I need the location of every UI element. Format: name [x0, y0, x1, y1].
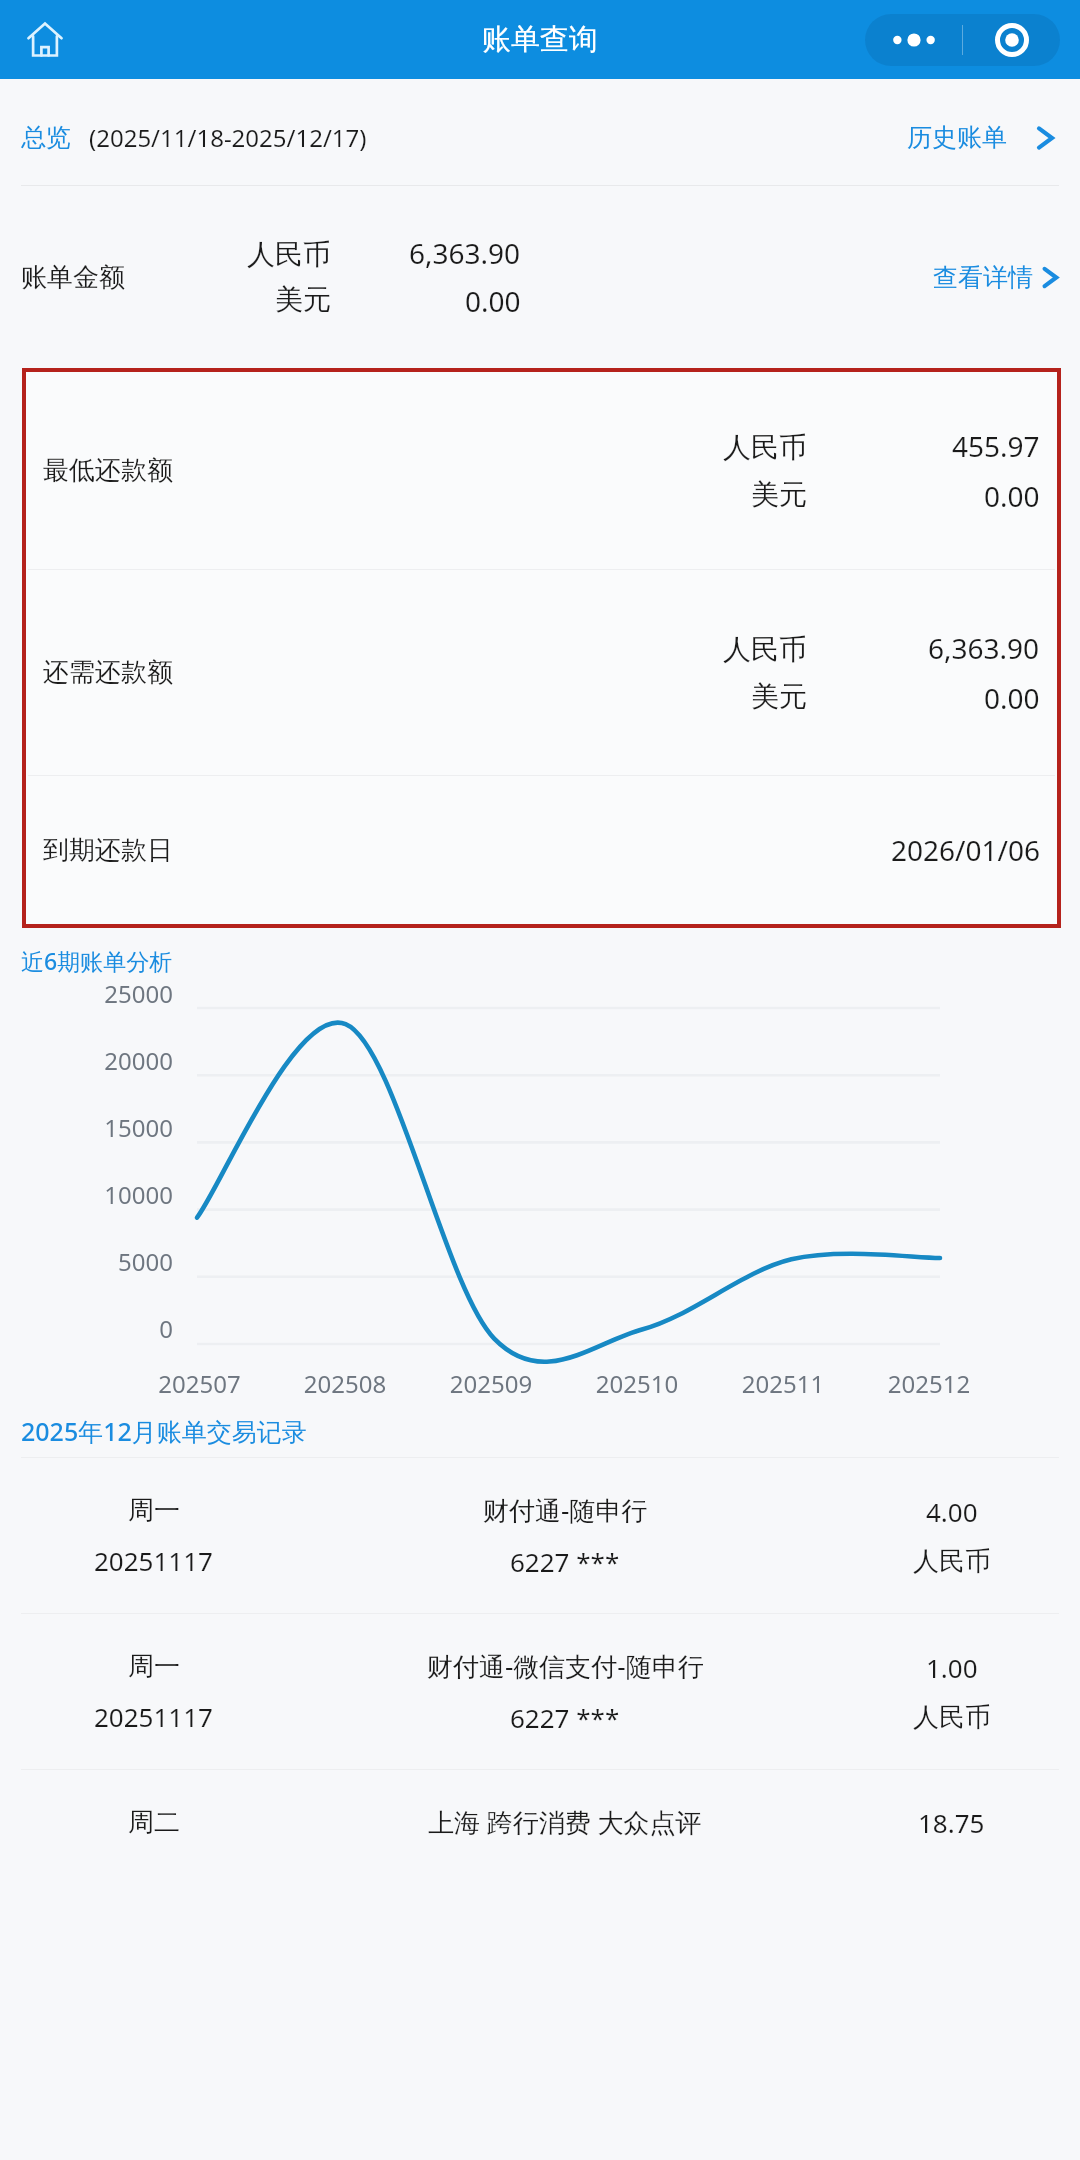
staticText: 历史账单: [907, 122, 1007, 153]
staticText: 202508: [272, 1367, 418, 1400]
button[interactable]: 历史账单: [907, 122, 1059, 153]
staticText: 财付通-微信支付-随申行: [427, 1648, 704, 1684]
button[interactable]: 总览: [21, 122, 71, 153]
staticText: 5000: [21, 1245, 173, 1278]
staticText: 还需还款额: [43, 656, 173, 689]
staticText: 2025年12月账单交易记录: [21, 1414, 307, 1448]
staticText: 账单金额: [21, 261, 201, 294]
staticText: 0: [21, 1312, 173, 1345]
staticText: 0.00: [465, 282, 521, 320]
staticText: 人民币: [913, 1701, 991, 1734]
staticText: 20251117: [94, 1699, 213, 1734]
button[interactable]: More: [865, 14, 962, 66]
staticText: 6227 ***: [510, 1544, 620, 1579]
button[interactable]: 到期还款日: [43, 776, 1040, 924]
staticText: 18.75: [918, 1805, 985, 1840]
button[interactable]: 周二: [21, 1770, 1059, 1925]
staticText: 202507: [127, 1367, 272, 1400]
staticText: 455.97: [952, 427, 1040, 465]
staticText: 账单查询: [482, 21, 598, 58]
staticText: 近6期账单分析: [21, 945, 173, 976]
staticText: 20000: [21, 1044, 173, 1077]
staticText: 202509: [418, 1367, 564, 1400]
staticText: 查看详情: [933, 262, 1033, 293]
staticText: 2026/01/06: [891, 831, 1040, 869]
button[interactable]: Home: [22, 17, 68, 63]
staticText: 财付通-随申行: [483, 1492, 648, 1528]
staticText: 15000: [21, 1111, 173, 1144]
staticText: 6,363.90: [928, 629, 1040, 667]
staticText: 6,363.90: [409, 234, 521, 272]
staticText: 上海 跨行消费 大众点评: [428, 1804, 702, 1840]
staticText: 周二: [128, 1806, 180, 1839]
staticText: 20251117: [94, 1543, 213, 1578]
staticText: 4.00: [926, 1494, 978, 1529]
staticText: 202510: [564, 1367, 710, 1400]
staticText: 美元: [751, 679, 807, 714]
staticText: 人民币: [913, 1545, 991, 1578]
staticText: 到期还款日: [43, 834, 173, 867]
staticText: 人民币: [723, 632, 807, 667]
staticText: 1.00: [926, 1650, 978, 1685]
staticText: 10000: [21, 1178, 173, 1211]
staticText: 美元: [751, 477, 807, 512]
button[interactable]: Close: [963, 14, 1060, 66]
staticText: 0.00: [984, 679, 1040, 717]
button[interactable]: 最低还款额: [43, 372, 1040, 569]
staticText: (2025/11/18-2025/12/17): [89, 121, 367, 154]
staticText: 202511: [710, 1367, 856, 1400]
button[interactable]: 还需还款额: [43, 570, 1040, 775]
staticText: 周一: [128, 1650, 180, 1683]
staticText: 6227 ***: [510, 1700, 620, 1735]
staticText: 202512: [856, 1367, 1002, 1400]
staticText: 最低还款额: [43, 454, 173, 487]
staticText: 人民币: [247, 237, 331, 272]
button[interactable]: 账单金额: [21, 186, 1059, 368]
button[interactable]: 周一: [21, 1458, 1059, 1613]
staticText: 周一: [128, 1494, 180, 1527]
staticText: 0.00: [984, 477, 1040, 515]
staticText: 25000: [21, 977, 173, 1010]
button[interactable]: 周一: [21, 1614, 1059, 1769]
staticText: 人民币: [723, 430, 807, 465]
staticText: 美元: [275, 282, 331, 317]
